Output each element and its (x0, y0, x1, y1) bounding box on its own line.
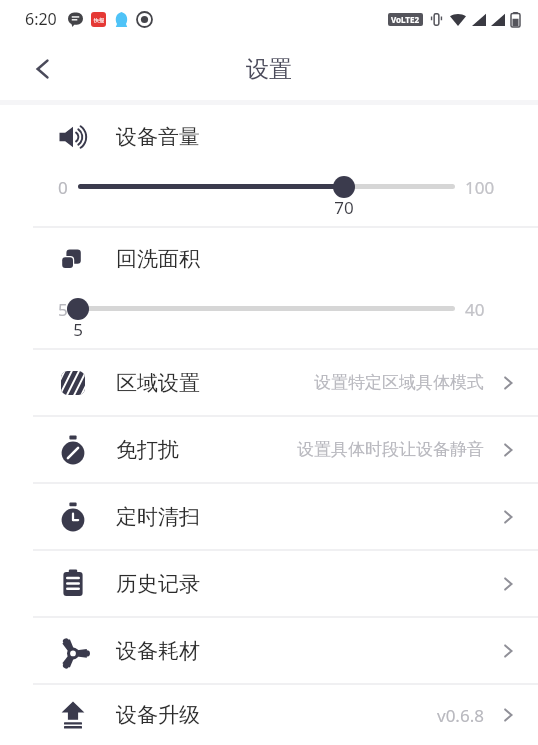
staticText: 区域设置 (116, 370, 200, 396)
staticText: 设备升级 (116, 702, 200, 728)
staticText: 定时清扫 (116, 504, 200, 530)
button[interactable]: 免打扰 (0, 417, 538, 482)
staticText: 设置特定区域具体模式 (314, 372, 484, 393)
button[interactable]: 定时清扫 (0, 484, 538, 549)
staticText: 历史记录 (116, 571, 200, 597)
button[interactable]: 回洗面积 (0, 228, 538, 348)
staticText: 40 (465, 298, 485, 321)
staticText: 5 (58, 298, 68, 321)
staticText: 0 (58, 176, 68, 199)
button[interactable]: 设备升级 (0, 685, 538, 745)
button[interactable]: 设备耗材 (0, 618, 538, 683)
staticText: 5 (53, 318, 103, 341)
staticText: 设备音量 (116, 124, 200, 150)
staticText: 回洗面积 (116, 246, 200, 272)
staticText: 免打扰 (116, 437, 179, 463)
staticText: v0.6.8 (437, 704, 484, 727)
staticText: 快报 (94, 17, 104, 23)
button[interactable]: Back (22, 48, 64, 90)
button[interactable]: 区域设置 (0, 350, 538, 415)
staticText: 设置具体时段让设备静音 (297, 439, 484, 460)
staticText: VoLTE2 (391, 14, 420, 25)
staticText: 设备耗材 (116, 638, 200, 664)
button[interactable]: 历史记录 (0, 551, 538, 616)
staticText: 70 (319, 196, 369, 219)
staticText: 设置 (246, 55, 292, 84)
staticText: 6:20 (25, 8, 57, 30)
button[interactable]: 设备音量 (0, 106, 538, 226)
staticText: 100 (465, 176, 495, 199)
